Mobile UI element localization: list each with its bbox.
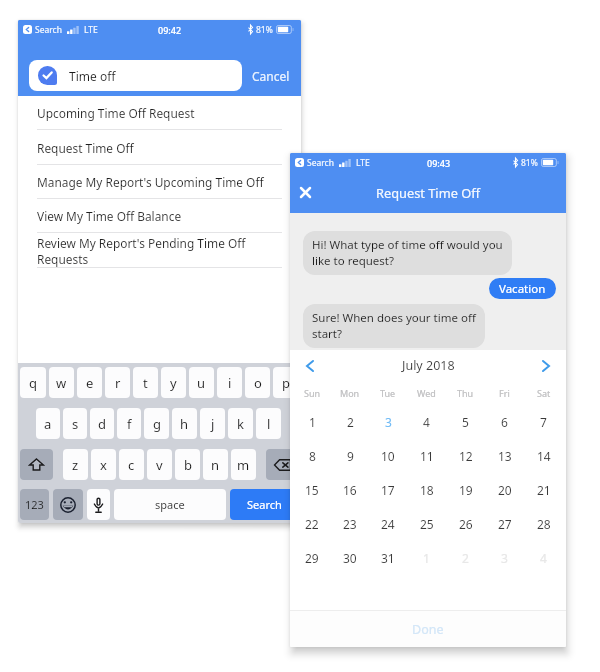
- button[interactable]: Next month: [537, 355, 555, 377]
- button[interactable]: 17: [369, 473, 407, 507]
- button[interactable]: 19: [446, 473, 485, 507]
- staticText: h: [180, 415, 189, 433]
- button[interactable]: Time off: [29, 60, 242, 91]
- button[interactable]: k: [228, 408, 253, 439]
- button[interactable]: 25: [407, 507, 446, 541]
- button[interactable]: z: [63, 449, 88, 480]
- button[interactable]: m: [231, 449, 256, 480]
- staticText: n: [211, 456, 220, 474]
- staticText: Review My Report's Pending Time Off Requ…: [37, 235, 246, 267]
- button[interactable]: c: [119, 449, 144, 480]
- button[interactable]: e: [77, 367, 102, 398]
- button[interactable]: Search: [230, 489, 298, 520]
- button[interactable]: n: [203, 449, 228, 480]
- button[interactable]: Cancel: [250, 64, 292, 88]
- button[interactable]: s: [63, 408, 87, 439]
- button[interactable]: h: [172, 408, 197, 439]
- button[interactable]: 11: [407, 439, 446, 473]
- button[interactable]: Manage My Report's Upcoming Time Off: [18, 165, 301, 199]
- button[interactable]: Shift: [20, 449, 53, 480]
- button[interactable]: r: [105, 367, 130, 398]
- button[interactable]: 26: [446, 507, 485, 541]
- button[interactable]: Previous month: [301, 355, 319, 377]
- button[interactable]: 14: [524, 439, 563, 473]
- staticText: o: [254, 374, 262, 392]
- button[interactable]: a: [36, 408, 60, 439]
- button[interactable]: v: [147, 449, 172, 480]
- button[interactable]: y: [161, 367, 186, 398]
- button[interactable]: 23: [331, 507, 369, 541]
- button[interactable]: w: [49, 367, 74, 398]
- button[interactable]: Upcoming Time Off Request: [18, 96, 301, 130]
- button[interactable]: 22: [293, 507, 331, 541]
- button[interactable]: 13: [485, 439, 524, 473]
- staticText: 2: [347, 414, 354, 430]
- button[interactable]: 5: [446, 405, 485, 439]
- button[interactable]: Review My Report's Pending Time Off Requ…: [18, 233, 301, 268]
- button[interactable]: 31: [369, 541, 407, 575]
- button[interactable]: 28: [524, 507, 563, 541]
- staticText: space: [155, 497, 185, 512]
- button[interactable]: o: [245, 367, 270, 398]
- staticText: Manage My Report's Upcoming Time Off: [37, 174, 264, 190]
- staticText: l: [267, 415, 271, 433]
- button[interactable]: u: [189, 367, 214, 398]
- button[interactable]: 123: [20, 489, 49, 520]
- button[interactable]: 27: [485, 507, 524, 541]
- staticText: x: [100, 456, 107, 474]
- button[interactable]: 8: [293, 439, 331, 473]
- button[interactable]: 16: [331, 473, 369, 507]
- button[interactable]: 24: [369, 507, 407, 541]
- staticText: v: [156, 456, 163, 474]
- staticText: q: [29, 374, 37, 392]
- button[interactable]: 29: [293, 541, 331, 575]
- staticText: 1: [423, 550, 430, 566]
- staticText: 31: [381, 550, 395, 566]
- button[interactable]: space: [114, 489, 226, 520]
- button[interactable]: 20: [485, 473, 524, 507]
- button[interactable]: 15: [293, 473, 331, 507]
- button[interactable]: 18: [407, 473, 446, 507]
- button[interactable]: Done: [290, 611, 566, 647]
- button[interactable]: 30: [331, 541, 369, 575]
- staticText: 81%: [521, 157, 538, 169]
- button[interactable]: 10: [369, 439, 407, 473]
- button[interactable]: 12: [446, 439, 485, 473]
- button[interactable]: 3: [369, 405, 407, 439]
- button[interactable]: Vacation: [489, 278, 556, 299]
- button[interactable]: t: [133, 367, 158, 398]
- button[interactable]: f: [117, 408, 141, 439]
- button[interactable]: p: [273, 367, 298, 398]
- button[interactable]: i: [217, 367, 242, 398]
- button[interactable]: 7: [524, 405, 563, 439]
- button[interactable]: b: [175, 449, 200, 480]
- staticText: 8: [309, 448, 316, 464]
- button[interactable]: 21: [524, 473, 563, 507]
- button[interactable]: 6: [485, 405, 524, 439]
- button[interactable]: Request Time Off: [18, 130, 301, 165]
- button[interactable]: q: [20, 367, 46, 398]
- button[interactable]: j: [200, 408, 225, 439]
- button[interactable]: 9: [331, 439, 369, 473]
- button[interactable]: 4: [407, 405, 446, 439]
- button[interactable]: 2: [331, 405, 369, 439]
- button[interactable]: x: [91, 449, 116, 480]
- button[interactable]: Backspace: [266, 449, 298, 480]
- button[interactable]: Emoji: [53, 489, 83, 520]
- staticText: 12: [459, 448, 473, 464]
- staticText: 25: [420, 516, 434, 532]
- staticText: 6: [501, 414, 508, 430]
- button[interactable]: l: [256, 408, 281, 439]
- button[interactable]: g: [144, 408, 169, 439]
- button[interactable]: d: [90, 408, 114, 439]
- button[interactable]: 1: [293, 405, 331, 439]
- staticText: Search: [247, 497, 282, 512]
- staticText: 7: [540, 414, 547, 430]
- button[interactable]: Close: [296, 183, 315, 202]
- button[interactable]: View My Time Off Balance: [18, 199, 301, 233]
- button[interactable]: Dictate: [87, 489, 110, 520]
